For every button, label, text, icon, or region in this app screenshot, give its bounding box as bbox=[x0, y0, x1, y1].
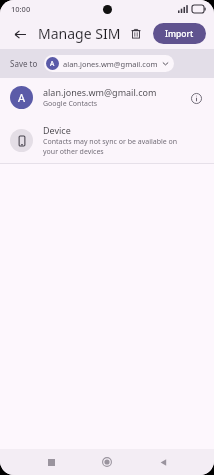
staticText: Contacts may not sync or be available on… bbox=[43, 137, 188, 157]
button[interactable]: Recent apps bbox=[42, 453, 60, 471]
staticText: Manage SIM bbox=[38, 24, 121, 43]
button[interactable]: Device bbox=[0, 117, 214, 163]
staticText: Save to bbox=[10, 58, 38, 69]
button[interactable]: Account info bbox=[186, 88, 206, 108]
staticText: Import bbox=[165, 28, 194, 40]
staticText: Device bbox=[43, 124, 71, 136]
staticText: A bbox=[18, 90, 26, 105]
staticText: Google Contacts bbox=[43, 99, 98, 109]
button[interactable]: A bbox=[44, 55, 174, 72]
button[interactable]: A bbox=[0, 78, 214, 117]
button[interactable]: Import bbox=[153, 23, 206, 44]
button[interactable]: Delete bbox=[125, 23, 147, 45]
staticText: alan.jones.wm@gmail.com bbox=[63, 59, 158, 69]
button[interactable]: Home bbox=[98, 453, 116, 471]
staticText: 10:00 bbox=[11, 4, 31, 14]
staticText: alan.jones.wm@gmail.com bbox=[43, 86, 157, 98]
button[interactable]: Back bbox=[154, 453, 172, 471]
button[interactable]: Back bbox=[8, 22, 32, 46]
staticText: A bbox=[50, 59, 55, 68]
